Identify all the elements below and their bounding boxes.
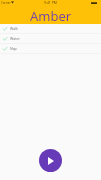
staticText: Water <box>10 36 20 41</box>
button[interactable]: Play <box>39 149 62 172</box>
staticText: 9:41 PM <box>44 0 57 5</box>
other: Wifi signal <box>11 0 14 5</box>
other: Battery <box>91 0 97 5</box>
staticText: Carrier <box>1 1 11 5</box>
button[interactable]: Nap <box>0 44 101 53</box>
button[interactable]: Water <box>0 34 101 43</box>
button[interactable]: Amber <box>30 7 72 25</box>
staticText: Walk <box>10 26 18 31</box>
staticText: Nap <box>10 46 17 51</box>
button[interactable]: Walk <box>0 24 101 33</box>
